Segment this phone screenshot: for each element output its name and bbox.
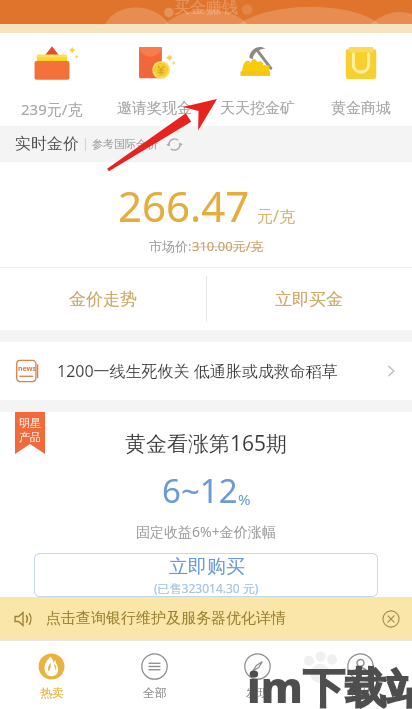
staticText: im下载站 [247, 658, 412, 709]
staticText: 立即购买 [169, 555, 245, 579]
staticText: 310.00元/克 [192, 237, 264, 255]
staticText: 点击查询银行维护及服务器优化详情 [46, 609, 382, 628]
staticText: 邀请奖现金 [117, 99, 192, 118]
staticText: 全部 [143, 685, 167, 700]
button[interactable]: 239元/克 [0, 33, 103, 126]
staticText: 6~12 [162, 468, 238, 513]
staticText: 266.47 [118, 177, 250, 234]
staticText: 金价走势 [69, 289, 137, 310]
staticText: 239元/克 [21, 99, 83, 119]
button[interactable]: 点击查询银行维护及服务器优化详情 [0, 597, 412, 640]
staticText: 天天挖金矿 [220, 99, 295, 118]
staticText: 发现 [246, 685, 270, 700]
staticText: 明星 [19, 416, 41, 430]
staticText: 元/克 [257, 205, 295, 227]
button[interactable]: news [0, 342, 412, 400]
staticText: 产品 [19, 430, 41, 444]
button[interactable]: 立即买金 [206, 268, 412, 330]
staticText: 买金赚钱 [174, 0, 238, 18]
staticText: 实时金价 [15, 134, 79, 154]
staticText: 参考国际金价 [92, 137, 158, 151]
button[interactable]: 邀请奖现金 [103, 33, 206, 126]
staticText: (已售323014.30 元) [154, 580, 259, 596]
staticText: 立即买金 [275, 289, 343, 310]
button[interactable]: 我的 [309, 640, 412, 709]
button[interactable]: 立即购买 [34, 553, 378, 597]
staticText: 黄金商城 [331, 99, 391, 118]
button[interactable]: 热卖 [0, 640, 103, 709]
button[interactable]: 天天挖金矿 [206, 33, 309, 126]
button[interactable]: 黄金商城 [309, 33, 412, 126]
staticText: 热卖 [40, 685, 64, 700]
staticText: 1200一线生死攸关 低通胀或成救命稻草 [57, 360, 384, 382]
staticText: 固定收益6%+金价涨幅 [136, 522, 276, 541]
staticText: 我的 [349, 685, 373, 700]
staticText: 市场价: [149, 237, 192, 255]
button[interactable]: Refresh price [166, 136, 183, 153]
staticText: news [18, 364, 37, 374]
staticText: 黄金看涨第165期 [125, 429, 288, 458]
button[interactable]: Close notice [382, 610, 400, 628]
button[interactable]: 全部 [103, 640, 206, 709]
button[interactable]: 金价走势 [0, 268, 206, 330]
button[interactable]: 发现 [206, 640, 309, 709]
staticText: % [238, 489, 251, 509]
